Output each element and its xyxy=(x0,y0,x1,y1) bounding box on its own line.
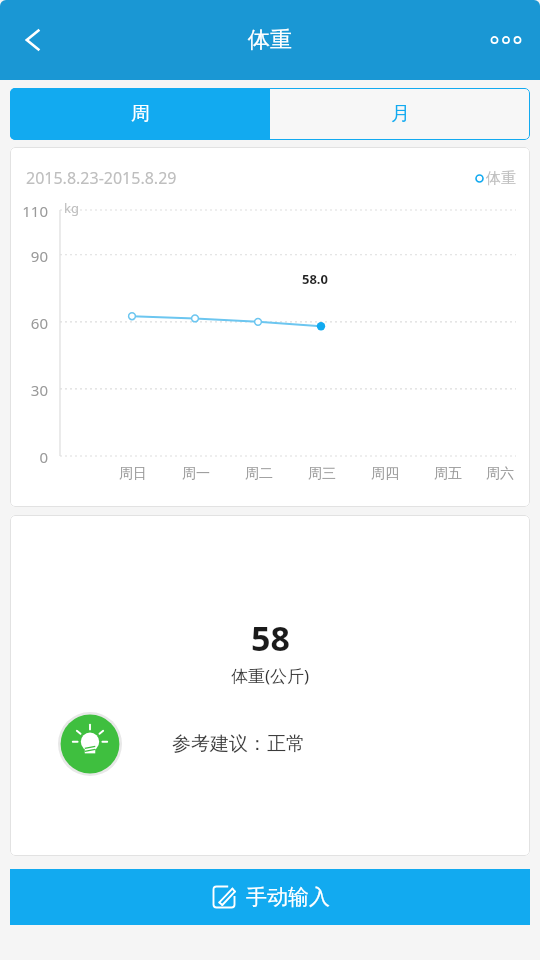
button[interactable]: Back xyxy=(6,12,62,68)
staticText: 手动输入 xyxy=(246,884,330,910)
staticText: 周四 xyxy=(371,465,399,483)
staticText: 周六 xyxy=(486,465,514,483)
staticText: 2015.8.23-2015.8.29 xyxy=(26,167,177,189)
staticText: 30 xyxy=(10,380,48,400)
staticText: 月 xyxy=(391,102,410,126)
staticText: 周 xyxy=(131,102,150,126)
staticText: 周三 xyxy=(308,465,336,483)
staticText: 110 xyxy=(10,201,48,221)
staticText: 周日 xyxy=(119,465,147,483)
button[interactable]: 手动输入 xyxy=(10,869,530,925)
staticText: 周二 xyxy=(245,465,273,483)
staticText: 参考建议：正常 xyxy=(172,732,305,756)
staticText: 60 xyxy=(10,313,48,333)
staticText: 58 xyxy=(251,615,290,661)
staticText: 体重(公斤) xyxy=(231,664,310,687)
button[interactable]: 月 xyxy=(270,88,530,140)
staticText: 体重 xyxy=(248,26,292,54)
staticText: 周一 xyxy=(182,465,210,483)
staticText: 0 xyxy=(10,447,48,467)
staticText: 体重 xyxy=(486,169,516,188)
staticText: kg xyxy=(64,199,79,217)
staticText: 周五 xyxy=(434,465,462,483)
button[interactable]: More options xyxy=(480,14,532,66)
staticText: 90 xyxy=(10,246,48,266)
staticText: 58.0 xyxy=(302,270,328,288)
button[interactable]: 周 xyxy=(10,88,270,140)
